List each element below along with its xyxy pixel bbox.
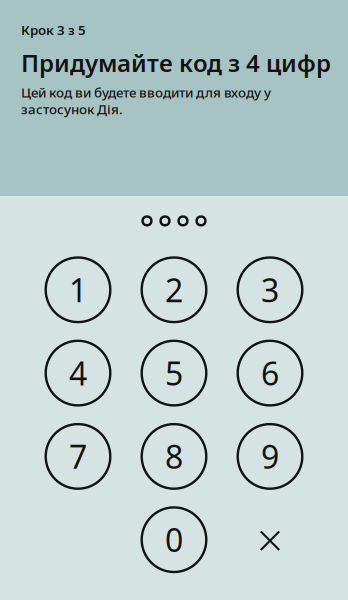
staticText: 6 xyxy=(261,352,279,394)
staticText: Придумайте код з 4 цифр xyxy=(21,47,331,79)
button[interactable]: 9 xyxy=(236,423,303,490)
button[interactable]: 7 xyxy=(44,423,111,490)
button[interactable]: 3 xyxy=(236,256,303,323)
staticText: 4 xyxy=(69,352,87,394)
button[interactable]: 0 xyxy=(140,506,207,573)
staticText: 9 xyxy=(261,435,279,478)
staticText: 2 xyxy=(165,269,183,311)
staticText: Цей код ви будете вводити для входу у за… xyxy=(21,84,271,118)
button[interactable]: 2 xyxy=(140,256,207,323)
staticText: 8 xyxy=(165,435,183,478)
staticText: 0 xyxy=(165,518,183,561)
staticText: Крок 3 з 5 xyxy=(21,21,86,39)
button[interactable]: 6 xyxy=(236,340,303,407)
staticText: 1 xyxy=(69,269,87,311)
staticText: 5 xyxy=(165,352,183,394)
staticText: 7 xyxy=(69,435,87,478)
button[interactable]: Видалити xyxy=(236,506,303,573)
button[interactable]: 8 xyxy=(140,423,207,490)
button[interactable]: 5 xyxy=(140,340,207,407)
staticText: 3 xyxy=(261,269,279,311)
button[interactable]: 4 xyxy=(44,340,111,407)
button[interactable]: 1 xyxy=(44,256,111,323)
